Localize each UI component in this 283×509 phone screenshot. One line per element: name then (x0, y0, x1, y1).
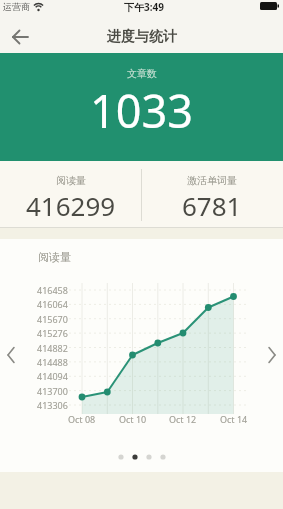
staticText: 416458 (37, 284, 68, 296)
staticText: 414882 (37, 342, 68, 354)
staticText: 阅读量 (38, 250, 71, 264)
staticText: Oct 14 (220, 413, 248, 425)
staticText: 阅读量 (56, 174, 86, 187)
button[interactable] (261, 339, 283, 371)
staticText: 文章数 (127, 67, 157, 80)
staticText: Oct 08 (68, 413, 96, 425)
staticText: 415670 (37, 313, 68, 325)
staticText: Oct 12 (169, 413, 197, 425)
staticText: 414094 (37, 370, 68, 382)
button[interactable] (0, 339, 22, 371)
staticText: Oct 10 (119, 413, 147, 425)
staticText: 413306 (37, 399, 68, 411)
staticText: 激活单词量 (187, 174, 237, 187)
button[interactable]: 激活单词量 (141, 161, 283, 228)
staticText: 下午3:49 (124, 0, 164, 14)
staticText: 416299 (26, 188, 116, 223)
staticText: 415276 (37, 327, 68, 339)
staticText: 414488 (37, 356, 68, 368)
button[interactable]: 阅读量 (0, 161, 141, 228)
button[interactable] (0, 20, 40, 53)
staticText: 1033 (90, 80, 193, 141)
staticText: 413700 (37, 385, 68, 397)
staticText: 416064 (37, 298, 68, 310)
staticText: 进度与统计 (107, 28, 177, 46)
staticText: 6781 (182, 188, 242, 223)
staticText: 运营商 (3, 1, 30, 12)
